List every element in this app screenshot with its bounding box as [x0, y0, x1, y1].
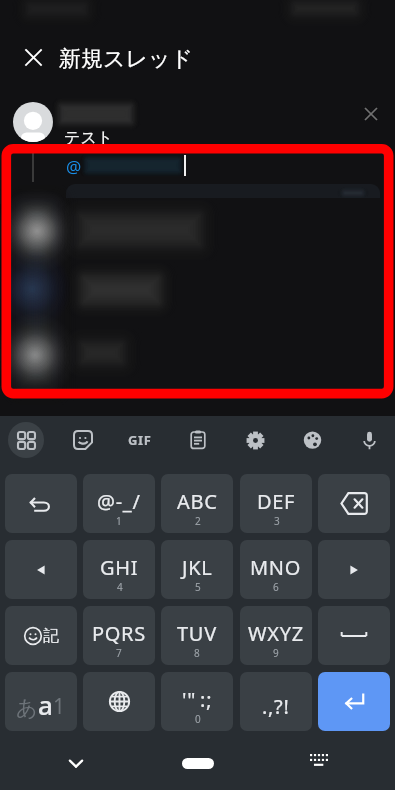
button[interactable]: .,?! — [240, 672, 312, 731]
staticText: WXYZ — [248, 620, 304, 647]
button[interactable]: Switch keyboard — [301, 745, 337, 781]
button[interactable]: enter — [318, 672, 390, 731]
staticText: '" :; — [182, 686, 213, 713]
button[interactable]: lang — [5, 672, 77, 731]
button[interactable]: undo — [5, 474, 77, 533]
staticText: 1 — [116, 514, 122, 528]
button[interactable]: PQRS — [83, 606, 155, 665]
button[interactable]: MNO — [240, 540, 312, 599]
staticText: 記 — [43, 626, 59, 646]
staticText: GIF — [128, 431, 152, 449]
staticText: GHI — [100, 554, 139, 581]
button[interactable]: '" :; — [161, 672, 233, 731]
staticText: @ — [66, 155, 82, 178]
staticText: 2 — [195, 514, 201, 528]
button[interactable]: settings — [234, 419, 276, 461]
staticText: 9 — [273, 646, 279, 660]
button[interactable]: GHI — [83, 540, 155, 599]
button[interactable]: grid — [5, 419, 47, 461]
button[interactable]: right — [318, 540, 390, 599]
staticText: DEF — [257, 488, 296, 515]
staticText: MNO — [250, 554, 302, 581]
staticText: あ — [16, 695, 38, 721]
button[interactable]: ABC — [161, 474, 233, 533]
staticText: .,?! — [262, 693, 290, 720]
staticText: 1 — [53, 692, 66, 721]
staticText: JKL — [182, 554, 213, 581]
button[interactable]: space — [318, 606, 390, 665]
button[interactable]: palette — [291, 419, 333, 461]
button[interactable]: Hide keyboard — [58, 745, 94, 781]
button[interactable]: WXYZ — [240, 606, 312, 665]
staticText: 3 — [274, 514, 280, 528]
button[interactable]: @-_/ — [83, 474, 155, 533]
button[interactable]: gif — [119, 419, 161, 461]
button[interactable]: sticker — [62, 419, 104, 461]
staticText: 4 — [117, 580, 123, 594]
staticText: 0 — [195, 712, 201, 726]
button[interactable]: left — [5, 540, 77, 599]
staticText: 8 — [194, 646, 200, 660]
button[interactable]: clipboard — [177, 419, 219, 461]
button[interactable]: JKL — [161, 540, 233, 599]
button[interactable]: back — [318, 474, 390, 533]
staticText: 新規スレッド — [59, 45, 194, 73]
staticText: TUV — [177, 620, 217, 647]
button[interactable]: Remove post — [356, 99, 385, 128]
staticText: テスト — [64, 128, 114, 148]
button[interactable]: TUV — [161, 606, 233, 665]
staticText: ABC — [177, 488, 218, 515]
button[interactable]: DEF — [240, 474, 312, 533]
button[interactable]: mic — [348, 419, 390, 461]
staticText: 6 — [273, 580, 279, 594]
button[interactable]: Close — [15, 39, 51, 75]
button[interactable]: globe — [83, 672, 155, 731]
staticText: a — [38, 687, 53, 722]
staticText: @-_/ — [97, 488, 141, 515]
staticText: 7 — [116, 646, 122, 660]
staticText: 5 — [195, 580, 201, 594]
button[interactable]: Home — [182, 758, 214, 769]
button[interactable]: emoji — [5, 606, 77, 665]
staticText: PQRS — [92, 620, 146, 647]
